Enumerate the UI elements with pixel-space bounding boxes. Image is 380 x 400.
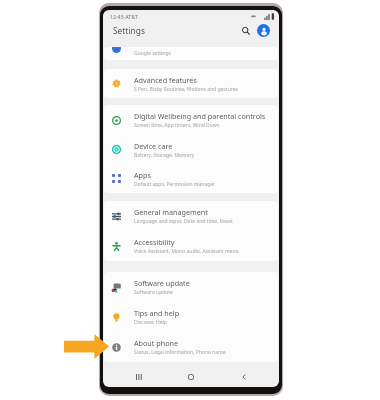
staticText: Software update [134,278,190,288]
button[interactable]: Advanced features [104,69,278,98]
button[interactable]: Home [174,366,208,387]
staticText: Advanced features [134,75,197,85]
button[interactable]: Accessibility [104,231,278,261]
button[interactable]: Device care [104,135,278,164]
staticText: Apps [134,170,151,180]
staticText: Tips and help [134,308,180,318]
button[interactable]: General management [104,201,278,231]
staticText: Default apps, Permission manager [134,181,216,188]
button[interactable]: Software update [104,272,278,302]
button[interactable]: Google settings [104,47,278,60]
staticText: 12:45 AT&T [110,13,138,20]
staticText: Discover, Help [134,319,167,326]
staticText: Accessibility [134,237,175,247]
staticText: Battery, Storage, Memory [134,152,195,159]
button[interactable]: Search [240,25,251,36]
button[interactable]: Apps [104,164,278,193]
button[interactable]: Recents [122,366,156,387]
staticText: Voice Assistant, Mono audio, Assistant m… [134,248,239,255]
staticText: Software update [134,289,173,296]
staticText: General management [134,207,208,217]
staticText: Digital Wellbeing and parental controls [134,111,266,121]
staticText: About phone [134,338,178,348]
staticText: S Pen, Bixby Routines, Motions and gestu… [134,86,238,93]
button[interactable]: Tips and help [104,302,278,332]
staticText: Language and input, Date and time, Reset [134,218,233,225]
button[interactable]: Digital Wellbeing and parental controls [104,105,278,135]
staticText: Screen time, App timers, Wind Down [134,122,220,129]
staticText: Device care [134,141,173,151]
button[interactable]: Back [227,366,261,387]
button[interactable]: About phone [104,332,278,362]
staticText: Settings [113,25,145,36]
button[interactable]: Account [257,24,270,37]
staticText: Google settings [134,50,171,57]
staticText: Status, Legal information, Phone name [134,349,226,356]
